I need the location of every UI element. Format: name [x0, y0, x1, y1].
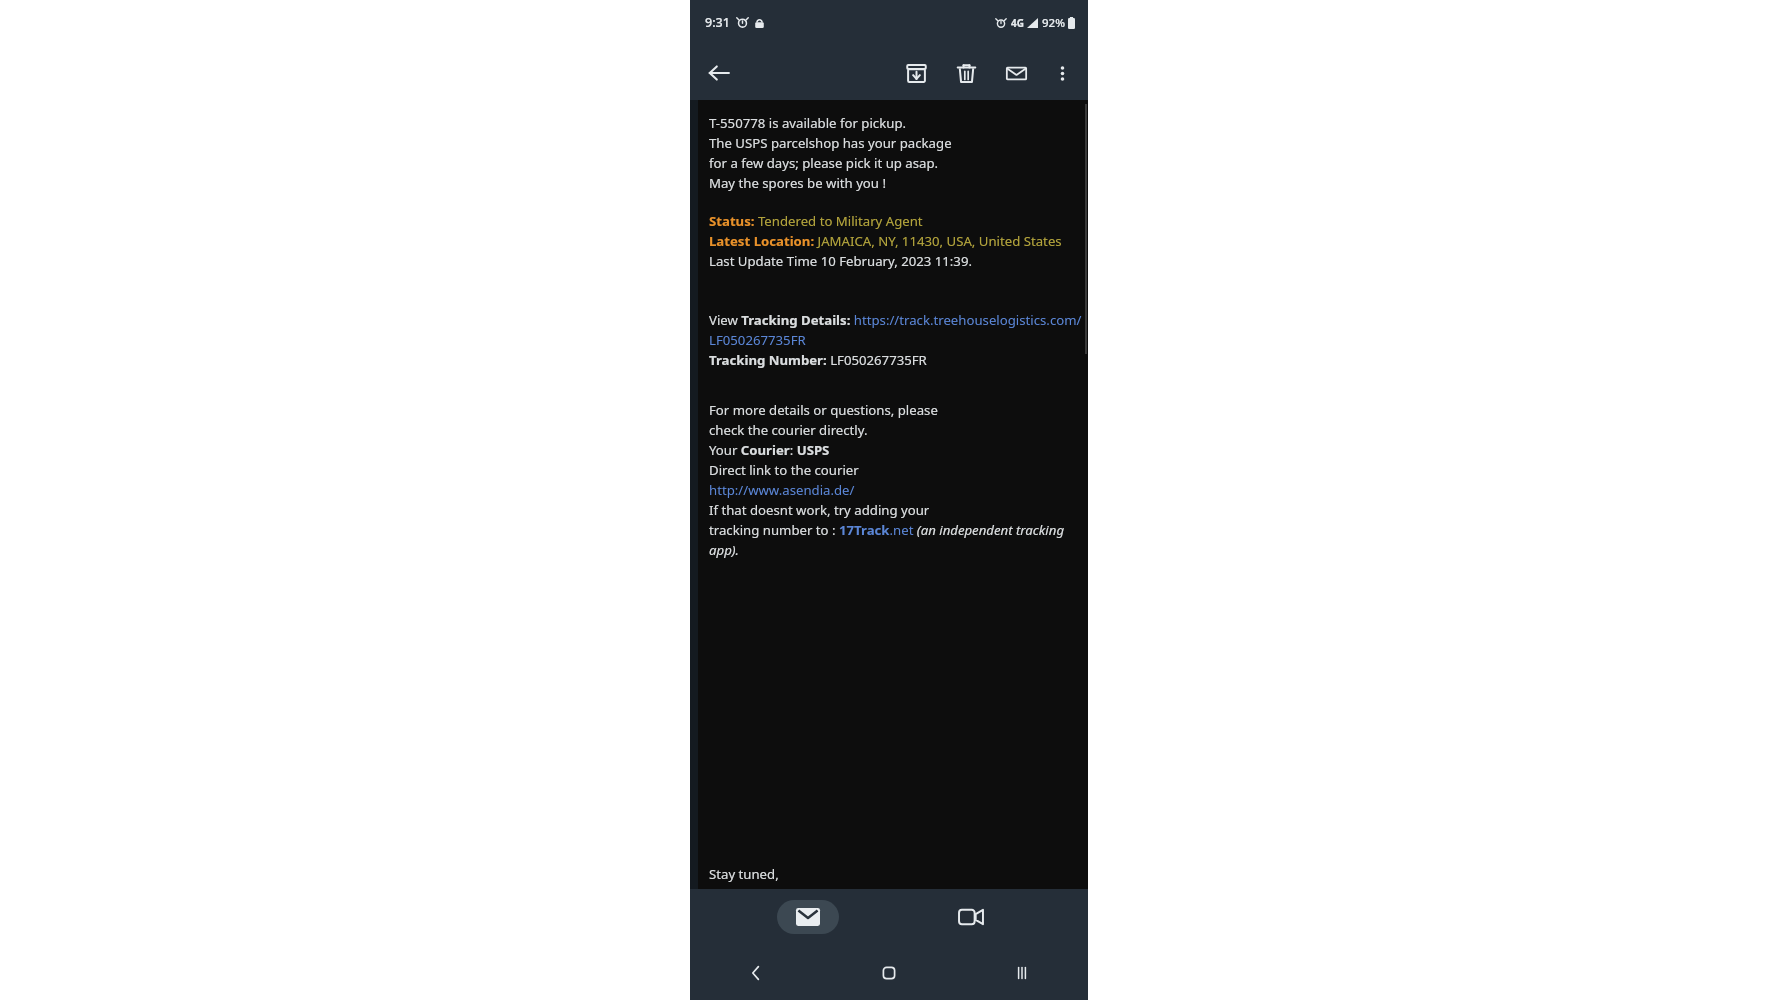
button[interactable]: Archive	[894, 51, 938, 95]
staticText: 9:31	[705, 14, 730, 31]
staticText: Stay tuned,	[709, 865, 779, 883]
button[interactable]: Back	[696, 50, 742, 96]
staticText: T-550778 is available for pickup. The US…	[709, 114, 952, 192]
staticText: For more details or questions, please ch…	[709, 401, 1082, 559]
button[interactable]: Mark as unread	[994, 51, 1038, 95]
button[interactable]: Recent apps	[955, 945, 1088, 1000]
button[interactable]: Back	[690, 945, 822, 1000]
button[interactable]: Email	[777, 900, 839, 934]
staticText: 92%	[1042, 15, 1065, 31]
button[interactable]: More options	[1040, 51, 1084, 95]
button[interactable]: Home	[822, 945, 955, 1000]
button[interactable]: Delete	[944, 51, 988, 95]
staticText: View Tracking Details: https://track.tre…	[709, 311, 1082, 369]
staticText: Status: Tendered to Military Agent Lates…	[709, 212, 1062, 270]
staticText: 4G	[1011, 16, 1024, 30]
button[interactable]: Video call	[940, 900, 1002, 934]
